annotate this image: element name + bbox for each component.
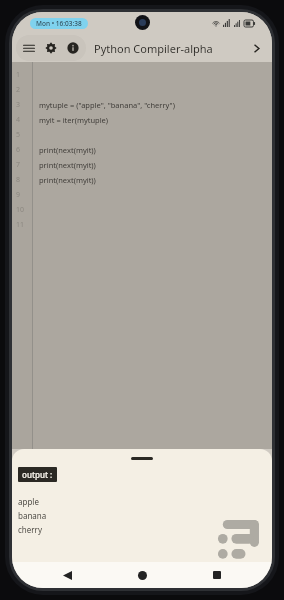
- staticText: mytuple = ("apple", "banana", "cherry"): [39, 100, 175, 110]
- button[interactable]: 1: [12, 62, 272, 449]
- staticText: print(next(myit)): [39, 175, 96, 185]
- staticText: 2: [16, 85, 21, 95]
- button[interactable]: More: [244, 36, 268, 60]
- button[interactable]: Resize output panel: [12, 449, 272, 467]
- staticText: 8: [16, 175, 21, 185]
- button[interactable]: Settings: [40, 37, 62, 59]
- staticText: cherry: [18, 524, 42, 535]
- button[interactable]: Home: [122, 562, 162, 588]
- staticText: 5: [16, 130, 21, 140]
- button[interactable]: Back: [47, 562, 87, 588]
- button[interactable]: Menu: [18, 37, 40, 59]
- staticText: 10: [16, 205, 25, 215]
- staticText: Mon • 16:03:38: [36, 19, 82, 28]
- staticText: 6: [16, 145, 21, 155]
- staticText: print(next(myit)): [39, 160, 96, 170]
- staticText: 3: [16, 100, 21, 110]
- staticText: myit = iter(mytuple): [39, 115, 109, 125]
- button[interactable]: Recents: [197, 562, 237, 588]
- staticText: 1: [16, 70, 21, 80]
- staticText: Python Compiler-alpha: [94, 41, 244, 56]
- staticText: apple: [18, 496, 39, 507]
- staticText: banana: [18, 510, 47, 521]
- staticText: 11: [16, 220, 25, 230]
- staticText: 7: [16, 160, 21, 170]
- staticText: 9: [16, 190, 21, 200]
- staticText: output :: [22, 469, 53, 480]
- staticText: 4: [16, 115, 21, 125]
- staticText: print(next(myit)): [39, 145, 96, 155]
- button[interactable]: Info: [62, 37, 84, 59]
